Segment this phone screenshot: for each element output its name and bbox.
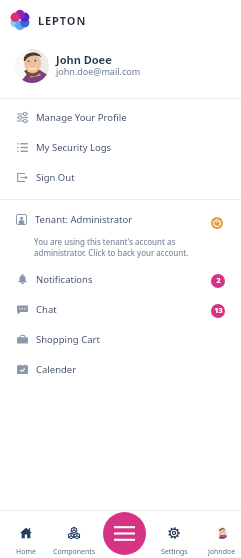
button[interactable]: Notifications	[0, 264, 241, 294]
button[interactable]: Manage Your Profile	[0, 102, 241, 132]
button[interactable]: My Security Logs	[0, 132, 241, 162]
button[interactable]: Chat	[0, 294, 241, 324]
staticText: Tenant: Administrator	[35, 213, 133, 226]
staticText: Components	[53, 547, 96, 557]
button[interactable]: John Doee	[0, 40, 241, 98]
staticText: Sign Out	[36, 171, 75, 184]
staticText: Calender	[36, 363, 77, 376]
staticText: You are using this tenant's account as a…	[34, 236, 196, 258]
button[interactable]: Open menu	[103, 512, 146, 555]
staticText: Manage Your Profile	[36, 111, 127, 124]
button[interactable]: johndoe	[199, 527, 241, 558]
staticText: My Security Logs	[36, 141, 112, 154]
staticText: Notifications	[36, 273, 93, 286]
button[interactable]: Components	[51, 527, 97, 558]
button[interactable]: Settings	[149, 527, 199, 558]
staticText: 13	[214, 306, 223, 316]
button[interactable]: Calender	[0, 354, 241, 384]
staticText: 2	[216, 276, 221, 286]
staticText: John Doee	[56, 52, 112, 67]
staticText: johndoe	[208, 547, 236, 557]
staticText: Chat	[36, 303, 57, 316]
button[interactable]: Home	[0, 527, 51, 558]
staticText: Home	[16, 547, 36, 557]
button[interactable]: Tenant: Administrator	[0, 200, 241, 264]
button[interactable]: Shopping Cart	[0, 324, 241, 354]
button[interactable]: Sign Out	[0, 162, 241, 192]
staticText: Settings	[161, 547, 188, 557]
staticText: LEPTON	[38, 13, 87, 28]
staticText: Shopping Cart	[36, 333, 100, 346]
staticText: john.doe@mail.com	[56, 65, 141, 77]
